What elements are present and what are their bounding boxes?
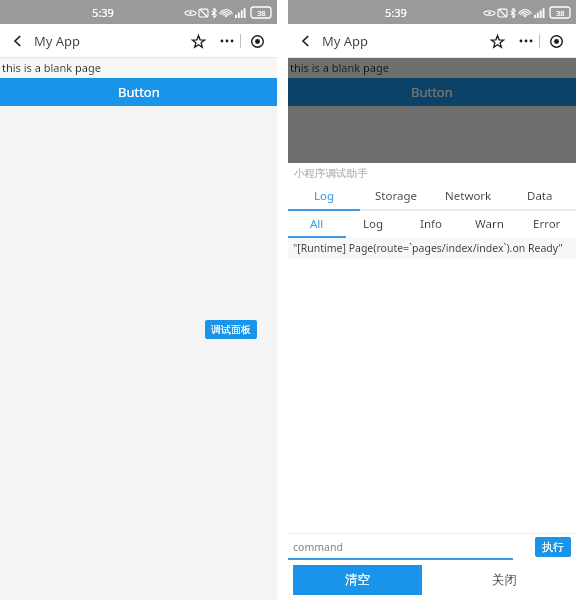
button[interactable]: 调试面板 — [211, 323, 251, 336]
button[interactable]: Favorite — [186, 29, 210, 53]
button[interactable]: All — [288, 211, 345, 236]
button[interactable]: 清空 — [293, 565, 422, 595]
staticText: 5:39 — [385, 5, 407, 20]
button[interactable]: 执行 — [542, 540, 564, 554]
button[interactable]: Data — [504, 183, 576, 209]
button[interactable]: Close — [245, 29, 269, 53]
staticText: Button — [118, 83, 160, 101]
staticText: My App — [322, 32, 369, 50]
button[interactable]: Back — [296, 31, 316, 51]
staticText: this is a blank page — [2, 60, 101, 75]
button[interactable]: Info — [402, 211, 460, 236]
staticText: 关闭 — [492, 572, 517, 588]
staticText: 调试面板 — [211, 323, 251, 336]
staticText: Data — [527, 188, 553, 204]
staticText: command — [293, 540, 343, 554]
button[interactable]: Error — [518, 211, 576, 236]
staticText: My App — [34, 32, 81, 50]
button[interactable]: Storage — [360, 183, 432, 209]
button[interactable]: Warn — [460, 211, 518, 236]
staticText: 38 — [556, 8, 565, 18]
staticText: 清空 — [345, 572, 370, 588]
button[interactable]: Close — [544, 29, 568, 53]
button[interactable]: 关闭 — [432, 560, 576, 600]
button[interactable]: More options — [515, 30, 537, 52]
staticText: 38 — [257, 8, 266, 18]
staticText: this is a blank page — [290, 60, 389, 75]
button[interactable]: command — [293, 540, 535, 554]
staticText: 小程序调试助手 — [294, 167, 368, 180]
staticText: 执行 — [542, 540, 564, 554]
button[interactable]: More options — [216, 30, 238, 52]
staticText: Button — [411, 83, 453, 101]
staticText: 5:39 — [92, 5, 114, 20]
button[interactable]: Favorite — [485, 29, 509, 53]
staticText: Info — [420, 216, 442, 232]
staticText: Storage — [375, 188, 417, 204]
button[interactable]: Back — [8, 31, 28, 51]
staticText: Warn — [475, 216, 504, 232]
button[interactable]: Log — [345, 211, 402, 236]
button[interactable]: Button — [0, 78, 277, 106]
button[interactable]: Log — [288, 183, 360, 209]
staticText: Error — [533, 216, 561, 232]
staticText: Network — [445, 188, 492, 204]
button[interactable]: Button — [288, 78, 576, 106]
staticText: All — [310, 216, 324, 232]
staticText: "[Runtime] Page(route=`pages/index/index… — [293, 241, 563, 255]
staticText: Log — [363, 216, 384, 232]
staticText: Log — [314, 188, 335, 204]
button[interactable]: Network — [432, 183, 504, 209]
